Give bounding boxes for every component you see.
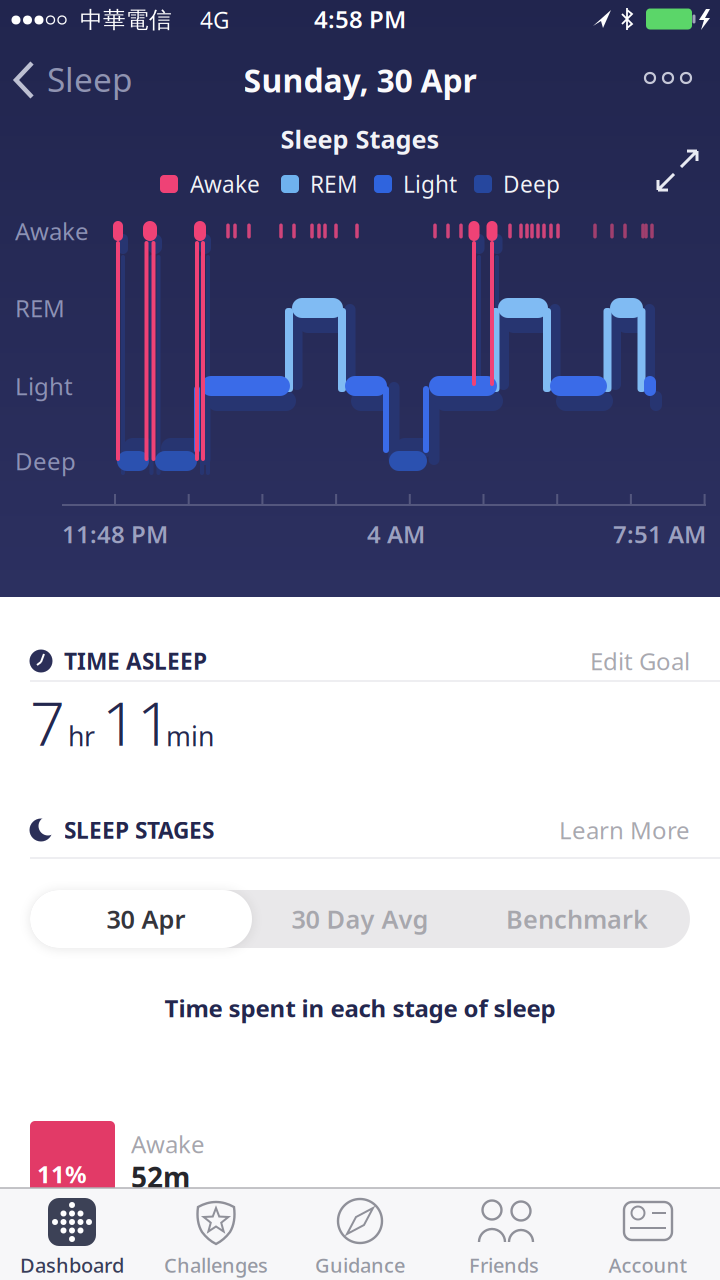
staticText: Account <box>608 1252 687 1278</box>
button[interactable]: Learn More <box>0 0 720 1280</box>
button[interactable] <box>0 0 720 1280</box>
staticText: SLEEP STAGES <box>64 815 214 845</box>
staticText: 11 <box>102 681 172 763</box>
button[interactable] <box>0 0 720 1280</box>
staticText: 30 Day Avg <box>291 902 428 936</box>
staticText: 30 Apr <box>106 902 185 936</box>
button[interactable]: Edit Goal <box>0 0 720 1280</box>
staticText: Challenges <box>164 1252 268 1278</box>
staticText: Dashboard <box>20 1252 124 1278</box>
staticText: 52m <box>131 1158 190 1196</box>
staticText: Light <box>403 169 457 199</box>
button[interactable]: 30 Apr <box>30 890 252 948</box>
staticText: 11:48 PM <box>62 518 168 550</box>
button[interactable]: Dashboard <box>0 0 720 1280</box>
staticText: 7:51 AM <box>613 518 706 550</box>
button[interactable]: 30 Day Avg <box>250 890 470 948</box>
button[interactable]: Guidance <box>0 0 720 1280</box>
staticText: Awake <box>15 215 89 247</box>
staticText: 中華電信 <box>80 6 172 34</box>
staticText: 11% <box>37 1158 87 1190</box>
staticText: 4 AM <box>367 518 425 550</box>
staticText: REM <box>310 169 358 199</box>
staticText: 4:58 PM <box>314 3 406 35</box>
button[interactable]: Account <box>0 0 720 1280</box>
staticText: REM <box>15 292 65 324</box>
staticText: Awake <box>131 1128 205 1160</box>
button[interactable]: Challenges <box>0 0 720 1280</box>
button[interactable]: Benchmark <box>467 890 687 948</box>
staticText: Sunday, 30 Apr <box>243 59 476 101</box>
staticText: Awake <box>190 169 260 199</box>
staticText: Friends <box>469 1252 539 1278</box>
staticText: Deep <box>15 445 76 477</box>
staticText: Light <box>15 370 73 402</box>
button[interactable]: Sleep <box>0 0 720 1280</box>
staticText: Sleep Stages <box>280 122 439 156</box>
button[interactable]: Friends <box>0 0 720 1280</box>
staticText: min <box>166 718 214 754</box>
staticText: Deep <box>503 169 560 199</box>
staticText: Time spent in each stage of sleep <box>164 992 555 1024</box>
staticText: TIME ASLEEP <box>64 646 207 676</box>
staticText: Sleep <box>47 57 133 101</box>
staticText: Guidance <box>315 1252 405 1278</box>
staticText: 4G <box>200 5 230 35</box>
staticText: Edit Goal <box>590 645 690 677</box>
staticText: Learn More <box>559 814 690 846</box>
staticText: 7 <box>30 681 65 763</box>
staticText: Benchmark <box>506 902 648 936</box>
staticText: hr <box>68 718 95 754</box>
